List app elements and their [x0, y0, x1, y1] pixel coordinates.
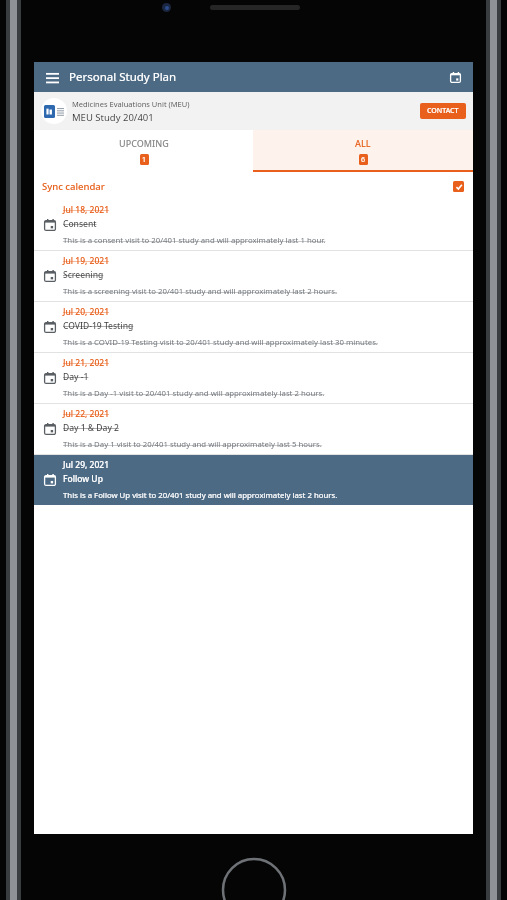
button[interactable]: Menu — [42, 67, 62, 87]
staticText: This is a Follow Up visit to 20/401 stud… — [63, 490, 338, 501]
button[interactable]: Sync calendar — [34, 172, 473, 200]
staticText: CONTACT — [427, 106, 459, 116]
staticText: Personal Study Plan — [69, 69, 177, 85]
button[interactable]: Jul 22, 2021 — [34, 404, 473, 454]
staticText: Screening — [63, 269, 104, 281]
button[interactable]: CONTACT — [420, 103, 466, 119]
staticText: This is a Day 1 visit to 20/401 study an… — [63, 439, 322, 450]
button[interactable]: Jul 19, 2021 — [34, 251, 473, 301]
staticText: Day -1 — [63, 371, 89, 383]
staticText: This is a screening visit to 20/401 stud… — [63, 286, 338, 297]
staticText: 1 — [142, 155, 147, 165]
staticText: This is a Day -1 visit to 20/401 study a… — [63, 388, 325, 399]
staticText: ALL — [355, 137, 371, 149]
button[interactable]: Medicines Evaluations Unit (MEU) — [34, 92, 473, 130]
staticText: Follow Up — [63, 473, 103, 485]
staticText: Sync calendar — [42, 180, 105, 193]
button[interactable]: Jul 29, 2021 — [34, 455, 473, 505]
staticText: Jul 20, 2021 — [63, 306, 110, 318]
staticText: Jul 22, 2021 — [63, 408, 110, 420]
staticText: Medicines Evaluations Unit (MEU) — [72, 99, 190, 109]
button[interactable]: Jul 20, 2021 — [34, 302, 473, 352]
staticText: This is a consent visit to 20/401 study … — [63, 235, 326, 246]
button[interactable]: ALL — [253, 130, 473, 172]
staticText: Jul 18, 2021 — [63, 204, 110, 216]
staticText: MEU Study 20/401 — [72, 111, 154, 124]
button[interactable]: Jul 18, 2021 — [34, 200, 473, 250]
staticText: COVID-19 Testing — [63, 320, 134, 332]
staticText: Consent — [63, 218, 97, 230]
staticText: This is a COVID-19 Testing visit to 20/4… — [63, 337, 378, 348]
button[interactable]: UPCOMING — [34, 130, 253, 172]
button[interactable]: Calendar — [445, 67, 465, 87]
staticText: UPCOMING — [119, 137, 169, 149]
staticText: Jul 29, 2021 — [63, 459, 110, 471]
staticText: Jul 21, 2021 — [63, 357, 110, 369]
button[interactable]: Jul 21, 2021 — [34, 353, 473, 403]
staticText: Jul 19, 2021 — [63, 255, 110, 267]
staticText: 6 — [361, 155, 366, 165]
other: Sync calendar toggle — [453, 181, 464, 192]
staticText: Day 1 & Day 2 — [63, 422, 119, 434]
